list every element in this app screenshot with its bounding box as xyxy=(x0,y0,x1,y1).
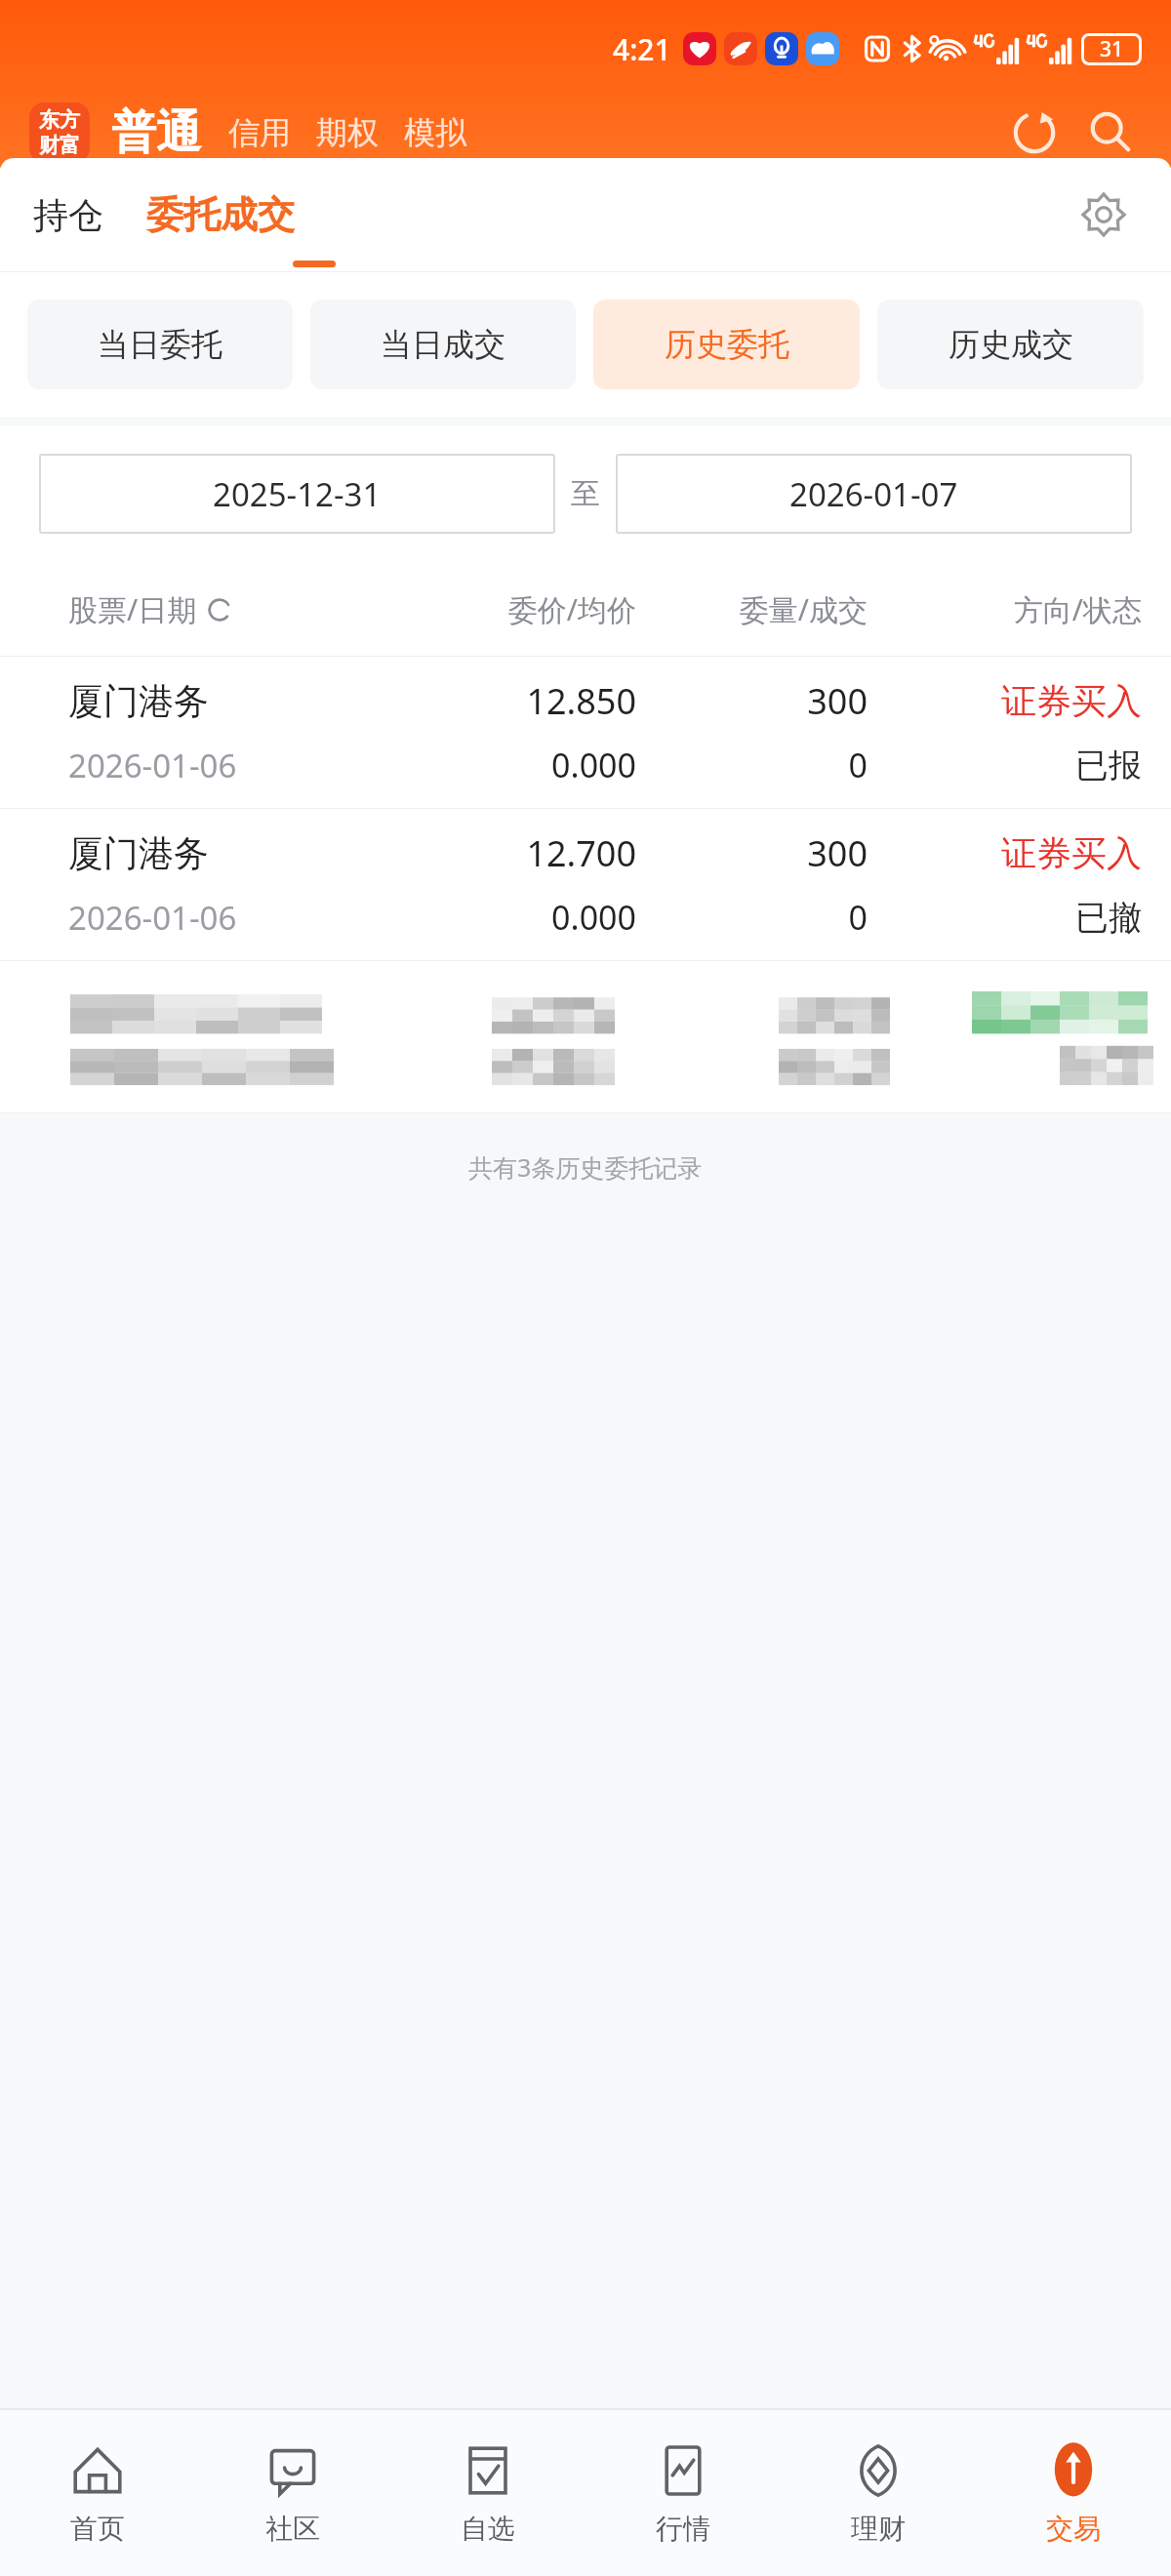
staticText: 历史成交 xyxy=(949,325,1073,364)
button[interactable]: Refresh xyxy=(1003,101,1066,164)
staticText: 历史委托 xyxy=(665,325,789,364)
staticText: 证券买入 xyxy=(868,831,1142,875)
staticText: 当日委托 xyxy=(98,325,222,364)
staticText: 期权 xyxy=(316,113,379,152)
staticText: 委价/均价 xyxy=(384,589,636,629)
staticText: 理财 xyxy=(851,2512,906,2546)
button[interactable]: 2026-01-07 xyxy=(616,454,1132,534)
staticText: 首页 xyxy=(70,2512,125,2546)
staticText: 0 xyxy=(636,743,868,787)
button[interactable] xyxy=(0,961,1171,1112)
staticText: 0.000 xyxy=(384,743,636,787)
staticText: 财富 xyxy=(39,133,80,158)
staticText: 行情 xyxy=(656,2512,710,2546)
staticText: 2026-01-06 xyxy=(68,744,384,787)
button[interactable]: 东方 xyxy=(29,102,90,163)
button[interactable]: 理财 xyxy=(781,2410,976,2576)
staticText: 12.850 xyxy=(384,677,636,725)
staticText: 委托成交 xyxy=(146,191,295,238)
staticText: 委量/成交 xyxy=(636,589,868,629)
staticText: 厦门港务 xyxy=(68,831,384,875)
button[interactable]: 厦门港务 xyxy=(0,657,1171,808)
staticText: 信用 xyxy=(228,113,291,152)
staticText: 至 xyxy=(571,475,600,512)
staticText: 持仓 xyxy=(33,193,103,237)
staticText: 当日成交 xyxy=(381,325,505,364)
button[interactable]: 2025-12-31 xyxy=(39,454,555,534)
staticText: 2025-12-31 xyxy=(213,472,382,516)
staticText: 300 xyxy=(636,829,868,877)
staticText: 社区 xyxy=(265,2512,320,2546)
staticText: 证券买入 xyxy=(868,679,1142,723)
staticText: 方向/状态 xyxy=(868,589,1142,629)
button[interactable]: 历史成交 xyxy=(877,300,1144,389)
button[interactable]: 当日成交 xyxy=(310,300,576,389)
staticText: 股票/日期 xyxy=(68,589,197,629)
staticText: 共有3条历史委托记录 xyxy=(468,1150,703,1184)
staticText: 已撤 xyxy=(868,897,1142,939)
staticText: 2026-01-06 xyxy=(68,896,384,940)
staticText: 300 xyxy=(636,677,868,725)
button[interactable]: 历史委托 xyxy=(593,300,860,389)
staticText: 0.000 xyxy=(384,895,636,940)
button[interactable]: Settings xyxy=(1070,181,1138,249)
staticText: 已报 xyxy=(868,745,1142,786)
staticText: 0 xyxy=(636,895,868,940)
button[interactable]: 模拟 xyxy=(404,113,466,152)
button[interactable]: 交易 xyxy=(976,2410,1171,2576)
staticText: 东方 xyxy=(39,107,80,133)
button[interactable]: 首页 xyxy=(0,2410,195,2576)
button[interactable]: Search xyxy=(1079,101,1142,164)
button[interactable]: 委托成交 xyxy=(146,191,295,238)
button[interactable]: 自选 xyxy=(390,2410,585,2576)
button[interactable]: 厦门港务 xyxy=(0,809,1171,960)
staticText: 模拟 xyxy=(404,113,466,152)
staticText: 普通 xyxy=(111,104,201,161)
staticText: 12.700 xyxy=(384,829,636,877)
staticText: 4:21 xyxy=(613,29,671,69)
button[interactable]: 普通 xyxy=(111,104,201,161)
button[interactable]: 持仓 xyxy=(33,181,103,249)
staticText: 厦门港务 xyxy=(68,679,384,723)
button[interactable]: 期权 xyxy=(316,113,379,152)
staticText: 自选 xyxy=(461,2512,515,2546)
button[interactable]: 行情 xyxy=(585,2410,781,2576)
button[interactable]: Sort xyxy=(205,595,234,624)
button[interactable]: 社区 xyxy=(195,2410,390,2576)
staticText: 31 xyxy=(1100,35,1124,63)
button[interactable]: 信用 xyxy=(228,113,291,152)
staticText: 交易 xyxy=(1046,2512,1101,2546)
staticText: 2026-01-07 xyxy=(789,472,958,516)
button[interactable]: 当日委托 xyxy=(27,300,293,389)
